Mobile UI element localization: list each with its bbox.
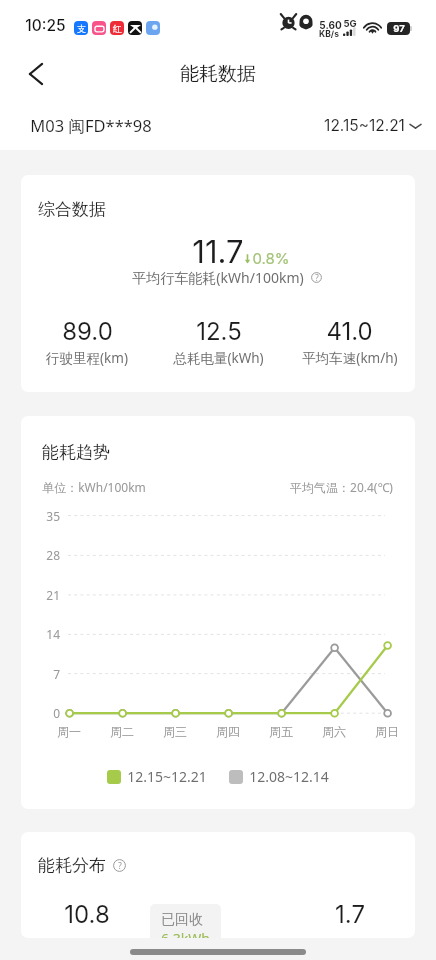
staticText: 35 bbox=[30, 508, 60, 524]
staticText: 周四 bbox=[208, 724, 248, 739]
staticText: 10.8 bbox=[64, 900, 110, 929]
staticText: 红 bbox=[113, 23, 122, 34]
staticText: 能耗趋势 bbox=[42, 442, 110, 463]
staticText: 21 bbox=[30, 587, 60, 603]
staticText: 已回收 bbox=[161, 911, 203, 929]
staticText: 12.08~12.14 bbox=[249, 767, 329, 786]
staticText: KB/s bbox=[319, 29, 339, 39]
button[interactable]: 12.15~12.21 bbox=[324, 116, 422, 135]
staticText: 周六 bbox=[314, 724, 354, 739]
staticText: 89.0 bbox=[62, 317, 113, 346]
staticText: 支 bbox=[77, 23, 86, 34]
staticText: 单位：kWh/100km bbox=[42, 479, 146, 495]
staticText: 5.60 bbox=[319, 19, 342, 31]
staticText: 周日 bbox=[367, 724, 407, 739]
staticText: 平均气温：20.4(℃) bbox=[290, 479, 393, 495]
staticText: 5G bbox=[343, 18, 357, 29]
staticText: 平均行车能耗(kWh/100km) bbox=[132, 268, 304, 287]
staticText: ? bbox=[118, 860, 122, 871]
staticText: 综合数据 bbox=[38, 199, 106, 220]
staticText: 行驶里程(km) bbox=[46, 349, 128, 367]
staticText: ? bbox=[315, 272, 319, 283]
staticText: 总耗电量(kWh) bbox=[173, 349, 264, 367]
staticText: M03 闽FD***98 bbox=[30, 114, 152, 137]
staticText: 97 bbox=[393, 23, 405, 34]
staticText: 10:25 bbox=[25, 16, 66, 35]
staticText: 12.5 bbox=[196, 317, 242, 346]
staticText: 周一 bbox=[49, 724, 89, 739]
staticText: 28 bbox=[30, 547, 60, 563]
staticText: 0 bbox=[30, 705, 60, 721]
staticText: 0.8% bbox=[252, 249, 290, 267]
staticText: 平均车速(km/h) bbox=[302, 349, 398, 367]
staticText: 能耗数据 bbox=[180, 62, 256, 86]
staticText: 6.3kWh bbox=[161, 929, 210, 938]
staticText: 能耗分布 bbox=[38, 855, 106, 876]
staticText: 12.15~12.21 bbox=[127, 767, 207, 786]
staticText: 周三 bbox=[155, 724, 195, 739]
button[interactable]: Back bbox=[12, 50, 60, 98]
staticText: 11.7 bbox=[192, 233, 244, 271]
staticText: 7 bbox=[30, 666, 60, 682]
staticText: 14 bbox=[30, 626, 60, 642]
staticText: 12.15~12.21 bbox=[324, 116, 405, 135]
staticText: 周五 bbox=[261, 724, 301, 739]
staticText: 周二 bbox=[102, 724, 142, 739]
staticText: 41.0 bbox=[326, 317, 373, 346]
staticText: 1.7 bbox=[335, 900, 365, 929]
